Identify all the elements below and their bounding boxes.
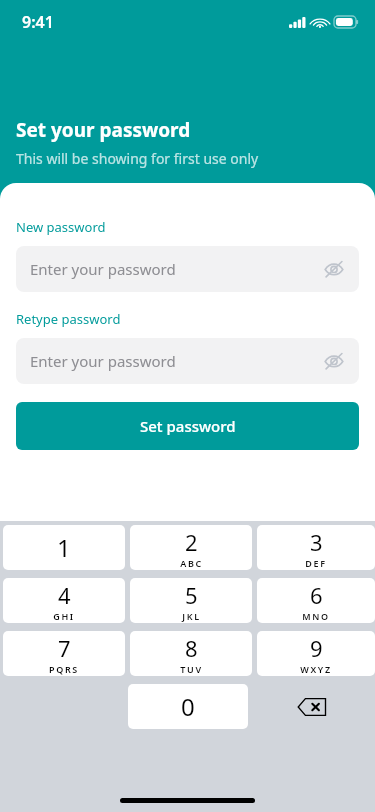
button[interactable]: Enter your password (16, 338, 359, 384)
staticText: Set password (140, 416, 236, 436)
staticText: 7 (58, 633, 71, 663)
staticText: 1 (57, 531, 71, 564)
staticText: 6 (310, 580, 323, 610)
button[interactable]: Delete (248, 684, 375, 729)
button[interactable]: Enter your password (16, 246, 359, 292)
staticText: 2 (185, 527, 198, 557)
button[interactable]: 3 (257, 525, 375, 570)
button[interactable]: 9 (257, 631, 375, 676)
staticText: Set your password (16, 117, 191, 143)
staticText: This will be showing for first use only (16, 149, 259, 168)
staticText: 9:41 (22, 11, 54, 33)
staticText: GHI (53, 610, 75, 622)
staticText: 4 (58, 580, 71, 610)
button[interactable]: 5 (130, 578, 252, 623)
staticText: JKL (182, 610, 201, 622)
staticText: Enter your password (30, 351, 176, 371)
button[interactable]: 7 (3, 631, 125, 676)
staticText: WXYZ (300, 663, 332, 675)
staticText: Enter your password (30, 259, 176, 279)
staticText: 0 (181, 690, 195, 723)
button[interactable]: 0 (128, 684, 248, 729)
staticText: TUV (180, 663, 203, 675)
staticText: 8 (185, 633, 198, 663)
button[interactable]: Set password (16, 402, 359, 450)
button[interactable]: 6 (257, 578, 375, 623)
staticText: 3 (310, 527, 323, 557)
staticText: DEF (305, 557, 327, 569)
staticText: 9 (310, 633, 323, 663)
button[interactable]: 4 (3, 578, 125, 623)
staticText: ABC (180, 557, 203, 569)
staticText: MNO (302, 610, 330, 622)
staticText: Retype password (16, 310, 121, 328)
staticText: 5 (185, 580, 198, 610)
button[interactable]: Show password (323, 350, 345, 372)
staticText: PQRS (49, 663, 79, 675)
button[interactable]: 1 (3, 525, 125, 570)
button[interactable]: 8 (130, 631, 252, 676)
staticText: New password (16, 218, 106, 236)
button[interactable]: Show password (323, 258, 345, 280)
button[interactable]: 2 (130, 525, 252, 570)
